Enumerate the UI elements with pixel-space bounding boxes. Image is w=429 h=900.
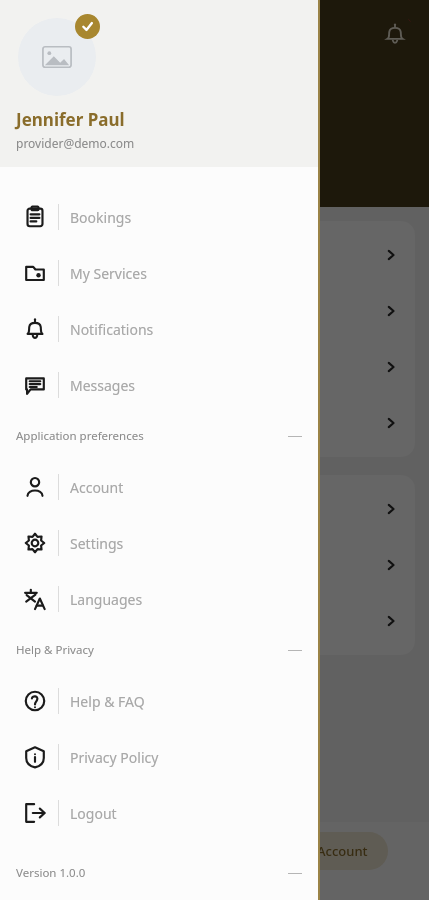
button[interactable] (14, 339, 415, 395)
staticText: Settings (70, 534, 124, 553)
button[interactable]: Logout (0, 785, 318, 841)
button[interactable]: Tab (41, 832, 85, 876)
button[interactable]: Messages (0, 357, 318, 413)
button[interactable]: Privacy Policy (0, 729, 318, 785)
button[interactable]: Settings (0, 515, 318, 571)
button[interactable]: Account (296, 832, 388, 870)
staticText: Messages (70, 376, 136, 395)
button[interactable] (14, 395, 415, 451)
staticText: Jennifer Paul (16, 108, 125, 131)
button[interactable] (14, 227, 415, 283)
staticText: Version 1.0.0 (16, 865, 86, 881)
button[interactable]: Account (0, 459, 318, 515)
button[interactable]: Languages (0, 571, 318, 627)
staticText: Account (317, 842, 368, 860)
button[interactable]: Bookings (0, 189, 318, 245)
staticText: provider@demo.com (16, 135, 135, 151)
staticText: Help & FAQ (70, 692, 145, 711)
staticText: Help & Privacy (16, 642, 94, 658)
staticText: Bookings (70, 208, 132, 227)
staticText: Logout (70, 804, 117, 823)
staticText: Application preferences (16, 428, 144, 444)
staticText: Languages (70, 590, 143, 609)
staticText: Notifications (70, 320, 154, 339)
button[interactable]: My Services (0, 245, 318, 301)
staticText: My Services (70, 264, 147, 283)
button[interactable]: Notifications (0, 301, 318, 357)
staticText: Account (70, 478, 124, 497)
button[interactable]: Notifications (375, 14, 415, 54)
button[interactable] (14, 283, 415, 339)
button[interactable] (14, 593, 415, 649)
button[interactable] (14, 481, 415, 537)
staticText: Privacy Policy (70, 748, 159, 767)
button[interactable] (14, 537, 415, 593)
button[interactable]: Help & FAQ (0, 673, 318, 729)
